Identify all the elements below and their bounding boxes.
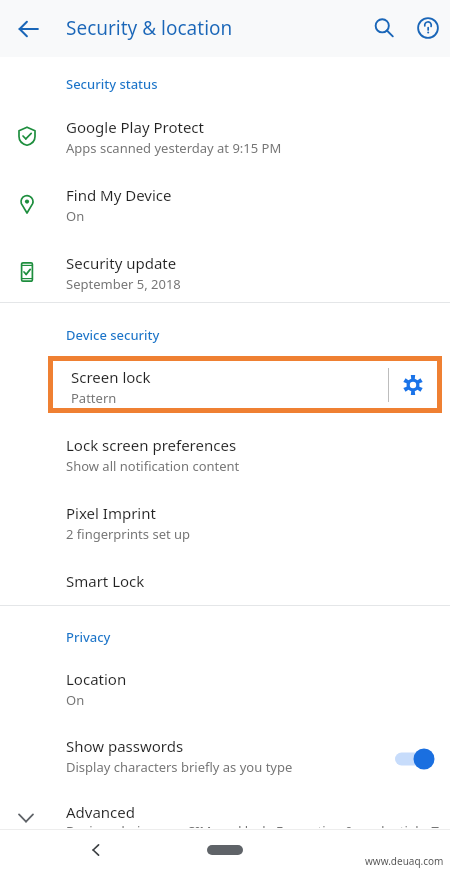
button[interactable]: Google Play Protect (0, 108, 450, 170)
button[interactable]: Advanced (0, 796, 450, 828)
button[interactable]: Search (364, 8, 404, 48)
button[interactable]: Screen lock settings (389, 361, 437, 408)
staticText: 2 fingerprints set up (66, 525, 191, 543)
staticText: On (66, 207, 85, 225)
staticText: Screen lock (71, 367, 151, 387)
staticText: On (66, 691, 85, 709)
button[interactable]: Back (76, 830, 116, 870)
staticText: Location (66, 669, 127, 689)
staticText: Device security (66, 326, 160, 344)
staticText: September 5, 2018 (66, 275, 181, 293)
staticText: Apps scanned yesterday at 9:15 PM (66, 139, 282, 157)
button[interactable]: Security update (0, 244, 450, 306)
staticText: Advanced (66, 802, 136, 822)
staticText: Find My Device (66, 185, 172, 205)
button[interactable]: Lock screen preferences (0, 426, 450, 488)
staticText: Privacy (66, 628, 111, 646)
button[interactable]: Screen lock (53, 361, 388, 408)
button[interactable]: Pixel Imprint (0, 494, 450, 556)
button[interactable]: Help (408, 8, 448, 48)
staticText: Pixel Imprint (66, 503, 156, 523)
button[interactable]: Smart Lock (0, 562, 450, 624)
staticText: Show passwords (66, 736, 184, 756)
staticText: Security update (66, 253, 177, 273)
staticText: Display characters briefly as you type (66, 758, 293, 776)
button[interactable]: Location (0, 660, 450, 722)
button[interactable]: Find My Device (0, 176, 450, 238)
staticText: Security status (66, 75, 158, 93)
button[interactable]: Home (207, 845, 243, 855)
staticText: www.deuaq.com (365, 854, 444, 868)
staticText: Lock screen preferences (66, 435, 237, 455)
button[interactable]: Show passwords (0, 728, 450, 790)
staticText: Show all notification content (66, 457, 240, 475)
staticText: Smart Lock (66, 571, 145, 591)
staticText: Pattern (71, 389, 117, 407)
button[interactable]: Back (8, 9, 48, 49)
staticText: Google Play Protect (66, 117, 204, 137)
button[interactable]: Show passwords toggle (394, 745, 436, 773)
staticText: Security & location (66, 15, 233, 41)
staticText: Device admin apps, SIM card lock, Encryp… (66, 822, 450, 840)
